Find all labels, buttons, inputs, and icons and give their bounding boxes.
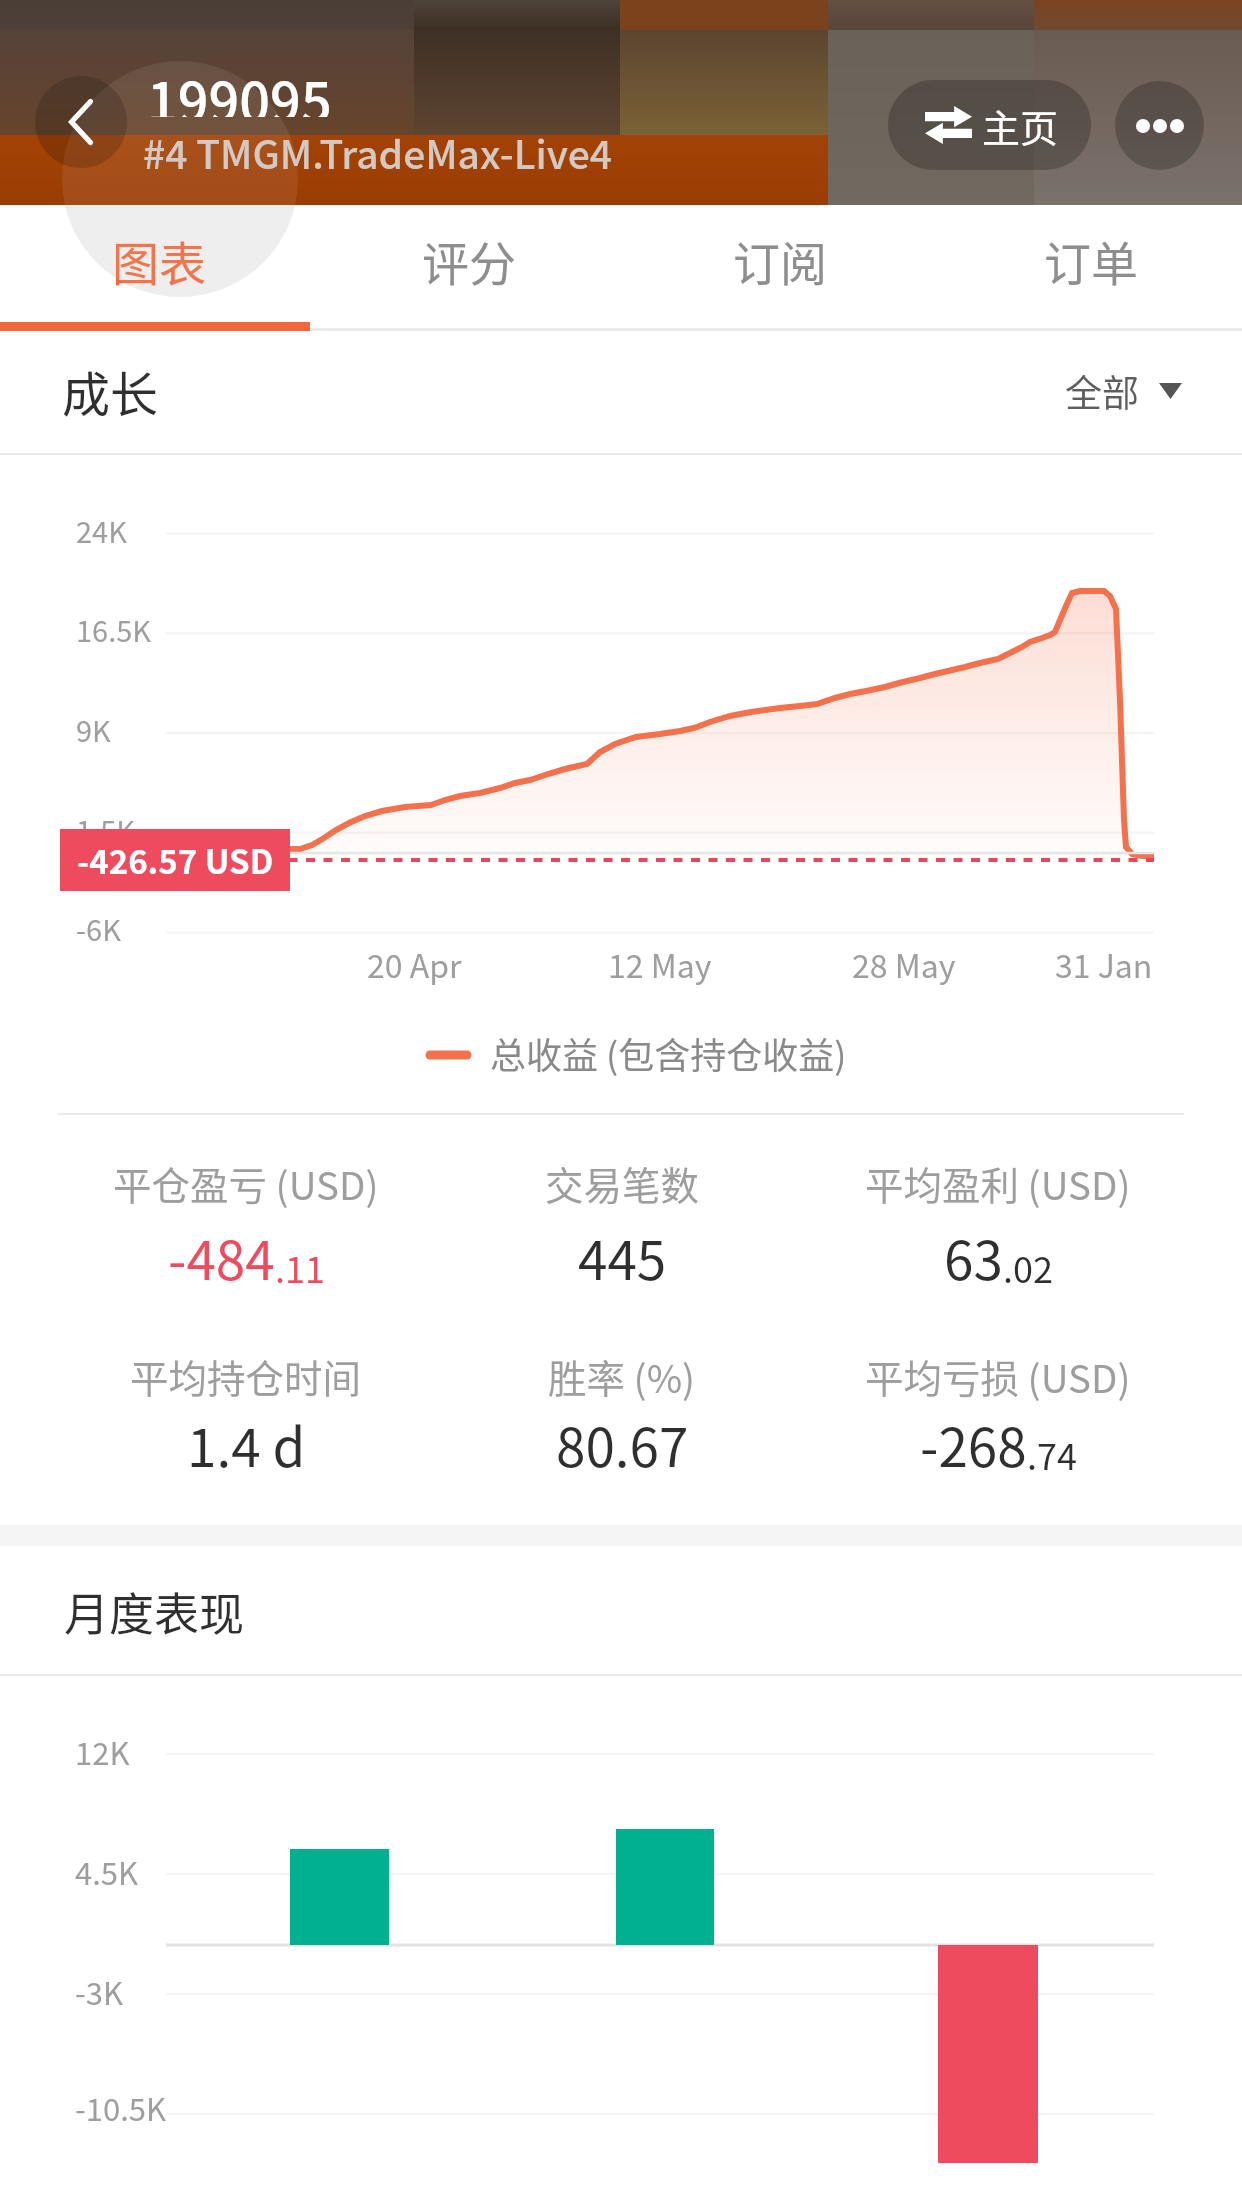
staticText: -484 [168, 1219, 275, 1296]
staticText: 交易笔数 [545, 1155, 700, 1211]
button[interactable]: More options [1115, 81, 1204, 170]
staticText: 全部 [1065, 364, 1139, 418]
staticText: 胜率 (%) [548, 1348, 696, 1404]
staticText: 63 [944, 1219, 1003, 1296]
staticText: 平均持仓时间 [130, 1348, 362, 1404]
staticText: 31 Jan [1055, 941, 1153, 987]
staticText: 月度表现 [64, 1579, 245, 1644]
staticText: #4 TMGM.TradeMax-Live4 [143, 124, 613, 176]
staticText: 1.5K [76, 808, 135, 850]
button[interactable]: 评分 [310, 205, 620, 331]
staticText: 28 May [852, 941, 956, 987]
button[interactable]: 图表 [0, 205, 310, 331]
button[interactable]: 全部 [1065, 364, 1182, 418]
button[interactable]: 订单 [931, 205, 1242, 331]
staticText: .11 [275, 1241, 325, 1293]
staticText: 16.5K [76, 608, 152, 650]
staticText: 20 Apr [367, 941, 462, 987]
staticText: 1.4 d [187, 1406, 306, 1483]
staticText: 4.5K [75, 1849, 139, 1894]
staticText: 评分 [422, 226, 516, 294]
staticText: .74 [1027, 1428, 1077, 1480]
staticText: 图表 [112, 226, 206, 294]
staticText: -426.57 USD [77, 836, 274, 884]
staticText: 199095 [147, 59, 332, 117]
staticText: 总收益 (包含持仓收益) [490, 1027, 847, 1079]
staticText: 24K [76, 509, 127, 551]
staticText: .02 [1003, 1241, 1053, 1293]
staticText: 平仓盈亏 (USD) [113, 1155, 379, 1211]
staticText: 12 May [608, 941, 712, 987]
staticText: 主页 [982, 98, 1059, 153]
staticText: 平均亏损 (USD) [865, 1348, 1131, 1404]
staticText: -3K [75, 1969, 123, 2014]
staticText: -10.5K [75, 2085, 167, 2130]
staticText: 12K [75, 1729, 130, 1774]
staticText: 订单 [1044, 226, 1138, 294]
button[interactable]: 主页 [888, 80, 1091, 170]
button[interactable]: 订阅 [620, 205, 931, 331]
staticText: 80.67 [556, 1406, 689, 1483]
staticText: 445 [578, 1219, 667, 1296]
staticText: 平均盈利 (USD) [865, 1155, 1131, 1211]
staticText: 9K [76, 708, 111, 750]
staticText: -268 [920, 1406, 1027, 1483]
staticText: -6K [76, 907, 121, 949]
staticText: 成长 [62, 356, 159, 426]
staticText: 订阅 [733, 226, 827, 294]
button[interactable]: Back [35, 76, 127, 168]
